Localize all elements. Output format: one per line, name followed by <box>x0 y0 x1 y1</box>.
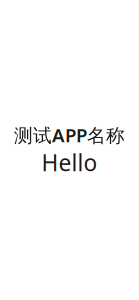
staticText: Hello <box>41 147 97 177</box>
staticText: 测试APP名称 <box>14 123 125 147</box>
